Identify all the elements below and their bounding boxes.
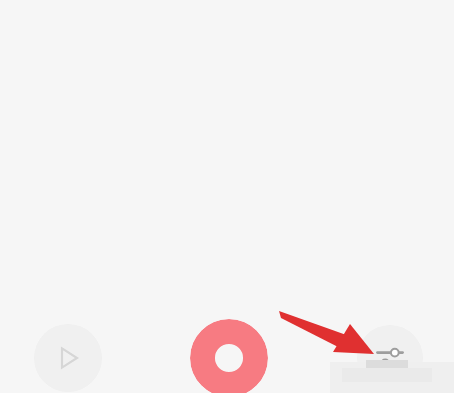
button[interactable]: Record <box>190 319 268 393</box>
button[interactable]: Play <box>34 324 102 392</box>
button[interactable]: Settings <box>357 325 423 391</box>
